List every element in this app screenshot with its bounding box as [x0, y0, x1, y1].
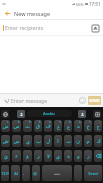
button[interactable]: More options: [93, 110, 101, 118]
button[interactable]: Arabic: [27, 110, 72, 117]
staticText: 66%: [76, 2, 84, 7]
staticText: ؤ: [26, 153, 29, 159]
staticText: ☺: [33, 171, 38, 176]
button[interactable]: لا: [44, 150, 52, 162]
button[interactable]: ف: [44, 120, 52, 132]
staticText: ٠: [99, 120, 101, 124]
staticText: Enter message: [11, 97, 48, 104]
staticText: Send: [88, 171, 98, 176]
staticText: ث: [25, 123, 30, 129]
staticText: 17:51: [89, 1, 101, 7]
button[interactable]: ب: [34, 135, 42, 147]
staticText: م: [86, 138, 90, 144]
staticText: ض: [2, 123, 9, 129]
button[interactable]: SEND: [88, 96, 101, 105]
staticText: ل: [46, 138, 50, 144]
staticText: ٩: [89, 120, 91, 124]
staticText: ى: [56, 153, 60, 159]
staticText: ي: [26, 138, 30, 144]
staticText: ،: [23, 171, 25, 176]
button[interactable]: ☺: [32, 165, 40, 181]
button[interactable]: Settings: [78, 110, 86, 118]
button[interactable]: ض: [1, 120, 10, 132]
button[interactable]: خ: [84, 120, 92, 132]
button[interactable]: س: [12, 135, 21, 147]
button[interactable]: [42, 165, 72, 181]
button[interactable]: Aا: [11, 165, 20, 181]
staticText: Enter recipients: [5, 24, 44, 31]
staticText: ٢: [18, 120, 20, 124]
staticText: ز: [87, 153, 90, 159]
staticText: ٧: [69, 120, 71, 124]
button[interactable]: Sticker: [17, 110, 25, 118]
button[interactable]: ح: [94, 120, 102, 132]
staticText: ع: [67, 123, 70, 129]
button[interactable]: ة: [64, 150, 72, 162]
button[interactable]: ئ: [1, 150, 10, 162]
button[interactable]: ز: [84, 150, 92, 162]
staticText: ء: [15, 153, 18, 159]
staticText: خ: [86, 123, 90, 129]
button[interactable]: Back: [0, 7, 14, 19]
staticText: Arabic: [43, 111, 56, 117]
button[interactable]: ء: [12, 150, 21, 162]
staticText: ٦: [59, 120, 61, 124]
button[interactable]: ش: [1, 135, 10, 147]
button[interactable]: ؤ: [23, 150, 32, 162]
button[interactable]: ي: [23, 135, 32, 147]
staticText: New message: [14, 10, 51, 17]
staticText: و: [77, 153, 80, 159]
staticText: غ: [57, 123, 60, 129]
button[interactable]: ر: [34, 150, 42, 162]
staticText: ه: [77, 123, 80, 129]
staticText: ن: [76, 138, 80, 144]
button[interactable]: ع: [64, 120, 72, 132]
button[interactable]: ص: [12, 120, 21, 132]
button[interactable]: Voice input: [1, 110, 9, 118]
button[interactable]: ق: [34, 120, 42, 132]
button[interactable]: ث: [23, 120, 32, 132]
staticText: ا: [57, 138, 59, 144]
staticText: SEND: [89, 98, 100, 103]
staticText: ة: [67, 153, 70, 159]
button[interactable]: ا: [54, 135, 62, 147]
button[interactable]: .: [74, 165, 82, 181]
button[interactable]: ل: [44, 135, 52, 147]
staticText: Aا: [14, 171, 18, 176]
staticText: لا: [47, 153, 50, 159]
staticText: ح: [96, 123, 100, 129]
button[interactable]: Attach file: [2, 96, 11, 105]
button[interactable]: Emoji: [78, 96, 87, 105]
staticText: ف: [45, 123, 51, 129]
button[interactable]: Add recipient: [90, 23, 100, 33]
button[interactable]: 123!: [1, 165, 9, 181]
button[interactable]: ه: [74, 120, 82, 132]
staticText: س: [13, 138, 20, 144]
button[interactable]: ن: [74, 135, 82, 147]
staticText: ١: [7, 120, 9, 124]
staticText: ئ: [4, 153, 8, 159]
button[interactable]: Send: [84, 165, 102, 181]
staticText: ك: [96, 138, 101, 144]
button[interactable]: [94, 150, 102, 162]
staticText: ٥: [49, 120, 51, 124]
button[interactable]: غ: [54, 120, 62, 132]
staticText: ص: [13, 123, 20, 129]
button[interactable]: ى: [54, 150, 62, 162]
button[interactable]: ت: [64, 135, 72, 147]
button[interactable]: و: [74, 150, 82, 162]
staticText: ت: [66, 138, 71, 144]
staticText: ر: [37, 153, 40, 159]
staticText: .: [75, 171, 77, 176]
button[interactable]: ،: [22, 165, 30, 181]
staticText: 123!: [1, 171, 9, 176]
button[interactable]: ك: [94, 135, 102, 147]
staticText: ٣: [29, 120, 31, 124]
staticText: ٤: [39, 120, 41, 124]
staticText: ق: [36, 123, 40, 129]
staticText: ٨: [79, 120, 81, 124]
staticText: ش: [2, 138, 9, 144]
staticText: ب: [36, 138, 41, 144]
button[interactable]: م: [84, 135, 92, 147]
